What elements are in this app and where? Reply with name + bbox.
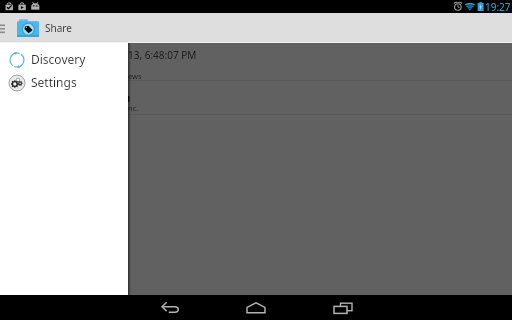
staticText: Settings — [31, 74, 77, 90]
button[interactable]: Back — [140, 295, 200, 320]
staticText: 13, 6:48:07 PM — [128, 48, 197, 62]
staticText: Discovery — [31, 51, 86, 67]
button[interactable]: nc. — [0, 81, 512, 115]
button[interactable]: Open navigation drawer — [0, 13, 14, 43]
button[interactable]: Home — [226, 295, 286, 320]
staticText: nc. — [128, 103, 139, 113]
button[interactable]: Discovery — [0, 48, 128, 71]
staticText: ews — [128, 71, 142, 81]
staticText: 19:27 — [485, 0, 511, 13]
button[interactable]: 13, 6:48:07 PM — [0, 43, 512, 81]
button[interactable]: Recent apps — [313, 295, 373, 320]
button[interactable]: Settings — [0, 71, 128, 94]
staticText: Share — [45, 21, 72, 35]
